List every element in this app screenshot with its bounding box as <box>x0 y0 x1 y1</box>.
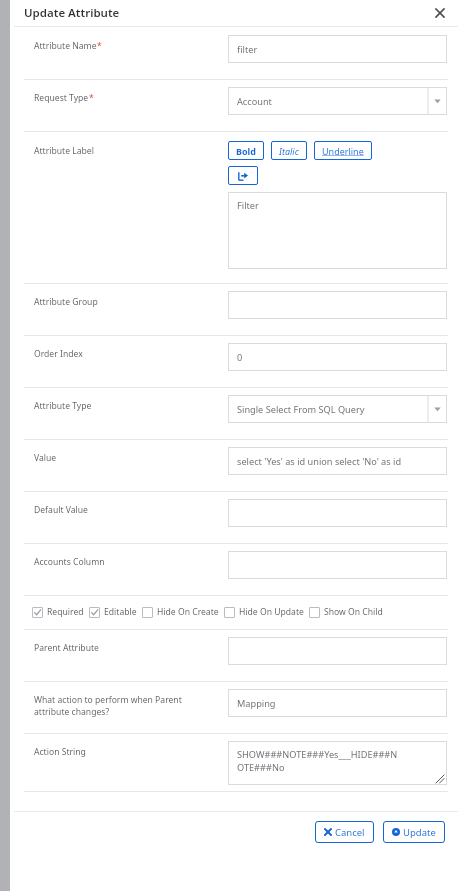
button[interactable]: Show On Child <box>309 606 388 618</box>
button[interactable]: Editable <box>89 606 142 618</box>
staticText: OTE###No <box>237 761 285 774</box>
button[interactable]: Account <box>228 87 447 115</box>
staticText: Request Type <box>34 92 89 104</box>
staticText: Value <box>34 452 57 464</box>
staticText: * <box>97 40 102 52</box>
staticText: Single Select From SQL Query <box>237 403 365 416</box>
staticText: Required <box>47 606 84 618</box>
staticText: attribute changes? <box>34 706 110 718</box>
staticText: Hide On Update <box>239 606 304 618</box>
staticText: Bold <box>236 145 256 157</box>
button[interactable]: Required <box>32 606 89 618</box>
staticText: Mapping <box>237 697 276 710</box>
button[interactable]: Italic <box>271 141 307 160</box>
button[interactable]: Close <box>431 4 449 22</box>
staticText: Parent Attribute <box>34 642 99 654</box>
button[interactable]: Insert link <box>228 166 258 185</box>
button[interactable]: Hide On Create <box>142 606 224 618</box>
staticText: Account <box>237 95 272 108</box>
staticText: Update <box>403 826 436 839</box>
button[interactable] <box>228 637 447 665</box>
button[interactable]: Single Select From SQL Query <box>228 395 447 423</box>
staticText: Cancel <box>335 826 365 839</box>
button[interactable]: SHOW###NOTE###Yes___HIDE###N <box>228 741 447 785</box>
button[interactable] <box>228 499 447 527</box>
staticText: filter <box>237 43 258 56</box>
button[interactable]: Bold <box>228 141 264 160</box>
button[interactable] <box>228 551 447 579</box>
staticText: Update Attribute <box>24 5 120 21</box>
staticText: Action String <box>34 746 86 758</box>
button[interactable]: Cancel <box>315 821 374 843</box>
staticText: select 'Yes' as id union select 'No' as … <box>237 455 402 468</box>
button[interactable] <box>228 291 447 319</box>
staticText: * <box>89 92 94 104</box>
staticText: Filter <box>237 199 259 212</box>
staticText: Italic <box>279 145 299 157</box>
staticText: Underline <box>322 145 364 157</box>
staticText: Attribute Type <box>34 400 92 412</box>
button[interactable]: select 'Yes' as id union select 'No' as … <box>228 447 447 475</box>
staticText: Show On Child <box>324 606 383 618</box>
staticText: Attribute Label <box>34 145 94 157</box>
staticText: Default Value <box>34 504 88 516</box>
staticText: Accounts Column <box>34 556 105 568</box>
staticText: 0 <box>237 351 243 364</box>
button[interactable]: Hide On Update <box>224 606 309 618</box>
staticText: Order Index <box>34 348 83 360</box>
staticText: Editable <box>104 606 137 618</box>
button[interactable]: Mapping <box>228 689 447 717</box>
button[interactable]: Filter <box>228 192 447 269</box>
button[interactable]: 0 <box>228 343 447 371</box>
button[interactable]: Update <box>383 821 445 843</box>
staticText: Hide On Create <box>157 606 219 618</box>
staticText: What action to perform when Parent <box>34 694 182 706</box>
button[interactable]: Underline <box>314 141 372 160</box>
staticText: Attribute Name <box>34 40 97 52</box>
button[interactable]: filter <box>228 35 447 63</box>
staticText: Attribute Group <box>34 296 98 308</box>
staticText: SHOW###NOTE###Yes___HIDE###N <box>237 748 398 761</box>
